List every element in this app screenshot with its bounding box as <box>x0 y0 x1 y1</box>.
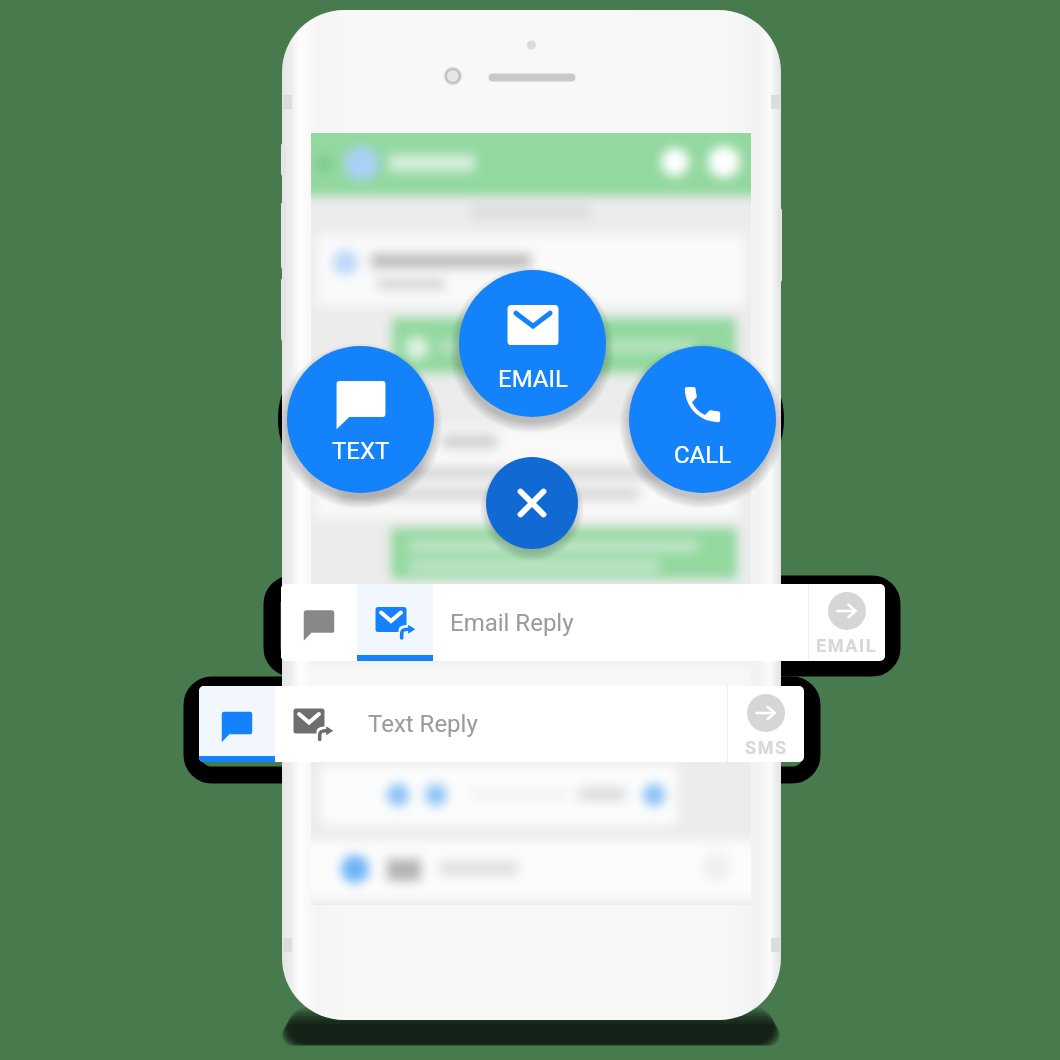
staticText: SMS <box>745 737 788 758</box>
staticText: Text Reply <box>368 710 478 738</box>
button[interactable]: Send text <box>287 346 434 493</box>
button[interactable]: Send SMS <box>728 686 804 762</box>
button[interactable]: Email reply <box>275 686 351 762</box>
button[interactable]: Close <box>486 457 578 549</box>
staticText: EMAIL <box>498 365 568 393</box>
staticText: TEXT <box>332 437 390 465</box>
button[interactable]: Send email <box>459 270 606 417</box>
staticText: CALL <box>674 441 732 469</box>
button[interactable]: Email reply <box>357 584 433 661</box>
staticText: Email Reply <box>450 609 574 637</box>
button[interactable]: Call <box>629 346 776 493</box>
button[interactable]: Send EMAIL <box>809 584 885 661</box>
staticText: EMAIL <box>816 635 878 656</box>
button[interactable]: SMS reply <box>281 584 357 661</box>
button[interactable]: SMS reply <box>199 686 275 762</box>
